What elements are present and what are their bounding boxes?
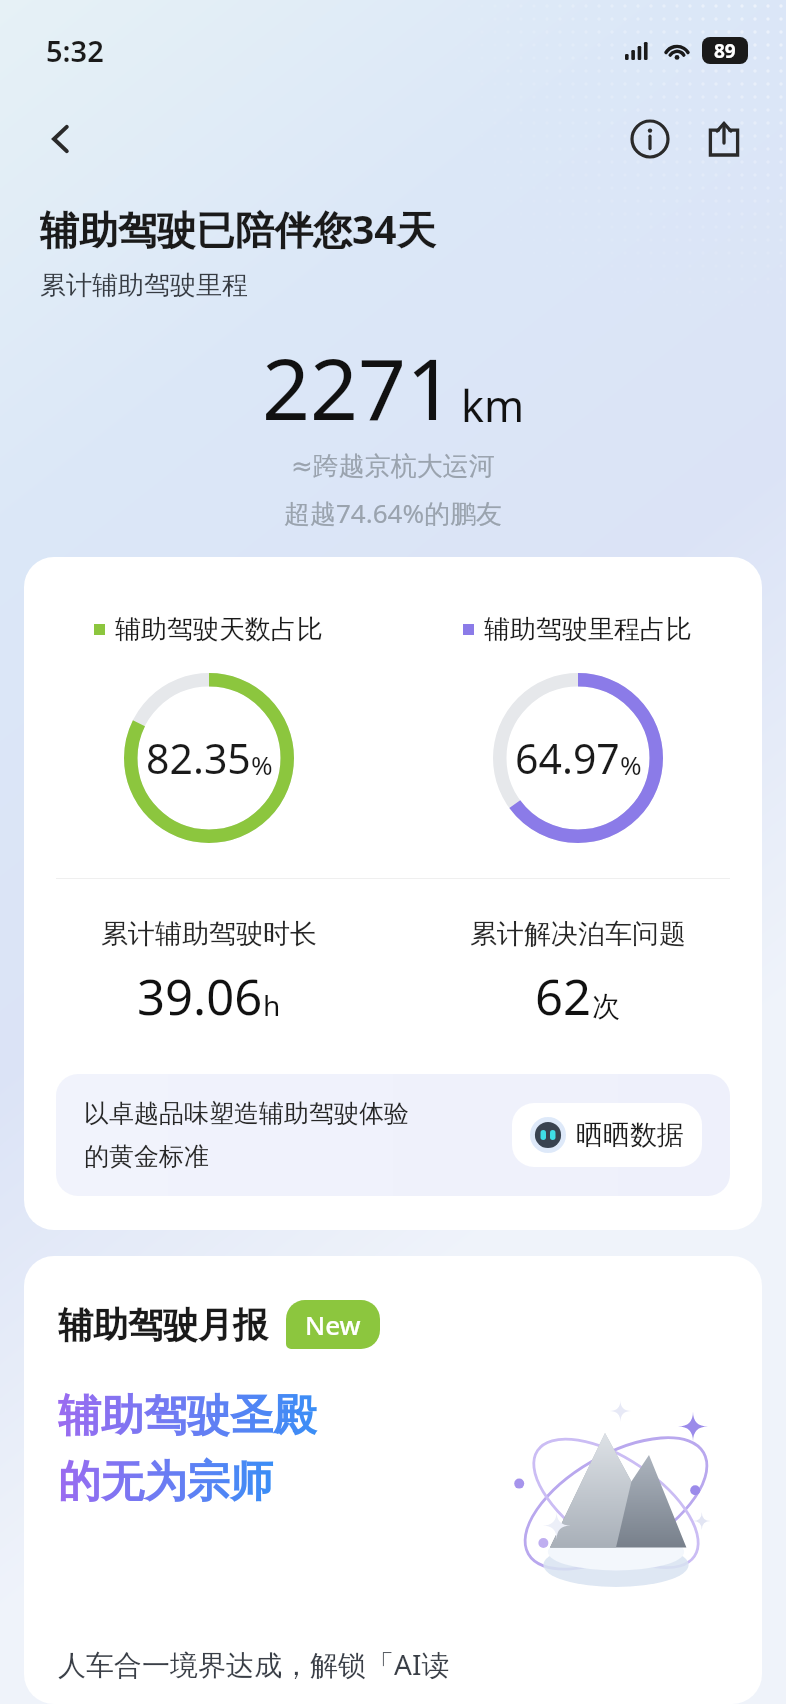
staticText: 次 [592, 989, 620, 1024]
button[interactable]: Back [32, 110, 90, 168]
staticText: h [263, 986, 281, 1024]
staticText: 辅助驾驶天数占比 [115, 613, 323, 646]
staticText: 超越74.64%的鹏友 [284, 495, 503, 531]
staticText: 人车合一境界达成，解锁「AI读 [58, 1645, 450, 1683]
staticText: 2271 [262, 330, 455, 444]
button[interactable]: Info [620, 109, 680, 169]
staticText: 累计解决泊车问题 [470, 917, 686, 951]
staticText: 89 [714, 38, 736, 64]
button[interactable]: 辅助驾驶月报 [24, 1256, 762, 1704]
staticText: ≈跨越京杭大运河 [291, 450, 495, 483]
staticText: 5:32 [46, 31, 104, 70]
staticText: % [620, 747, 642, 782]
staticText: 82.35 [146, 730, 251, 786]
button[interactable]: 晒晒数据 [512, 1103, 702, 1167]
staticText: 辅助驾驶里程占比 [484, 613, 692, 646]
staticText: 的无为宗师 [58, 1455, 273, 1509]
staticText: 以卓越品味塑造辅助驾驶体验 [84, 1098, 409, 1129]
staticText: 辅助驾驶圣殿 [58, 1389, 316, 1443]
staticText: km [461, 376, 525, 435]
staticText: % [251, 747, 273, 782]
staticText: 辅助驾驶月报 [58, 1303, 268, 1347]
staticText: 62 [535, 963, 592, 1030]
staticText: 累计辅助驾驶里程 [40, 269, 248, 302]
staticText: 晒晒数据 [576, 1118, 684, 1152]
staticText: 累计辅助驾驶时长 [101, 917, 317, 951]
staticText: 64.97 [515, 730, 620, 786]
staticText: 辅助驾驶已陪伴您34天 [40, 202, 436, 255]
staticText: 39.06 [137, 963, 263, 1030]
staticText: New [305, 1307, 361, 1342]
staticText: 的黄金标准 [84, 1141, 209, 1172]
button[interactable]: Share [694, 109, 754, 169]
